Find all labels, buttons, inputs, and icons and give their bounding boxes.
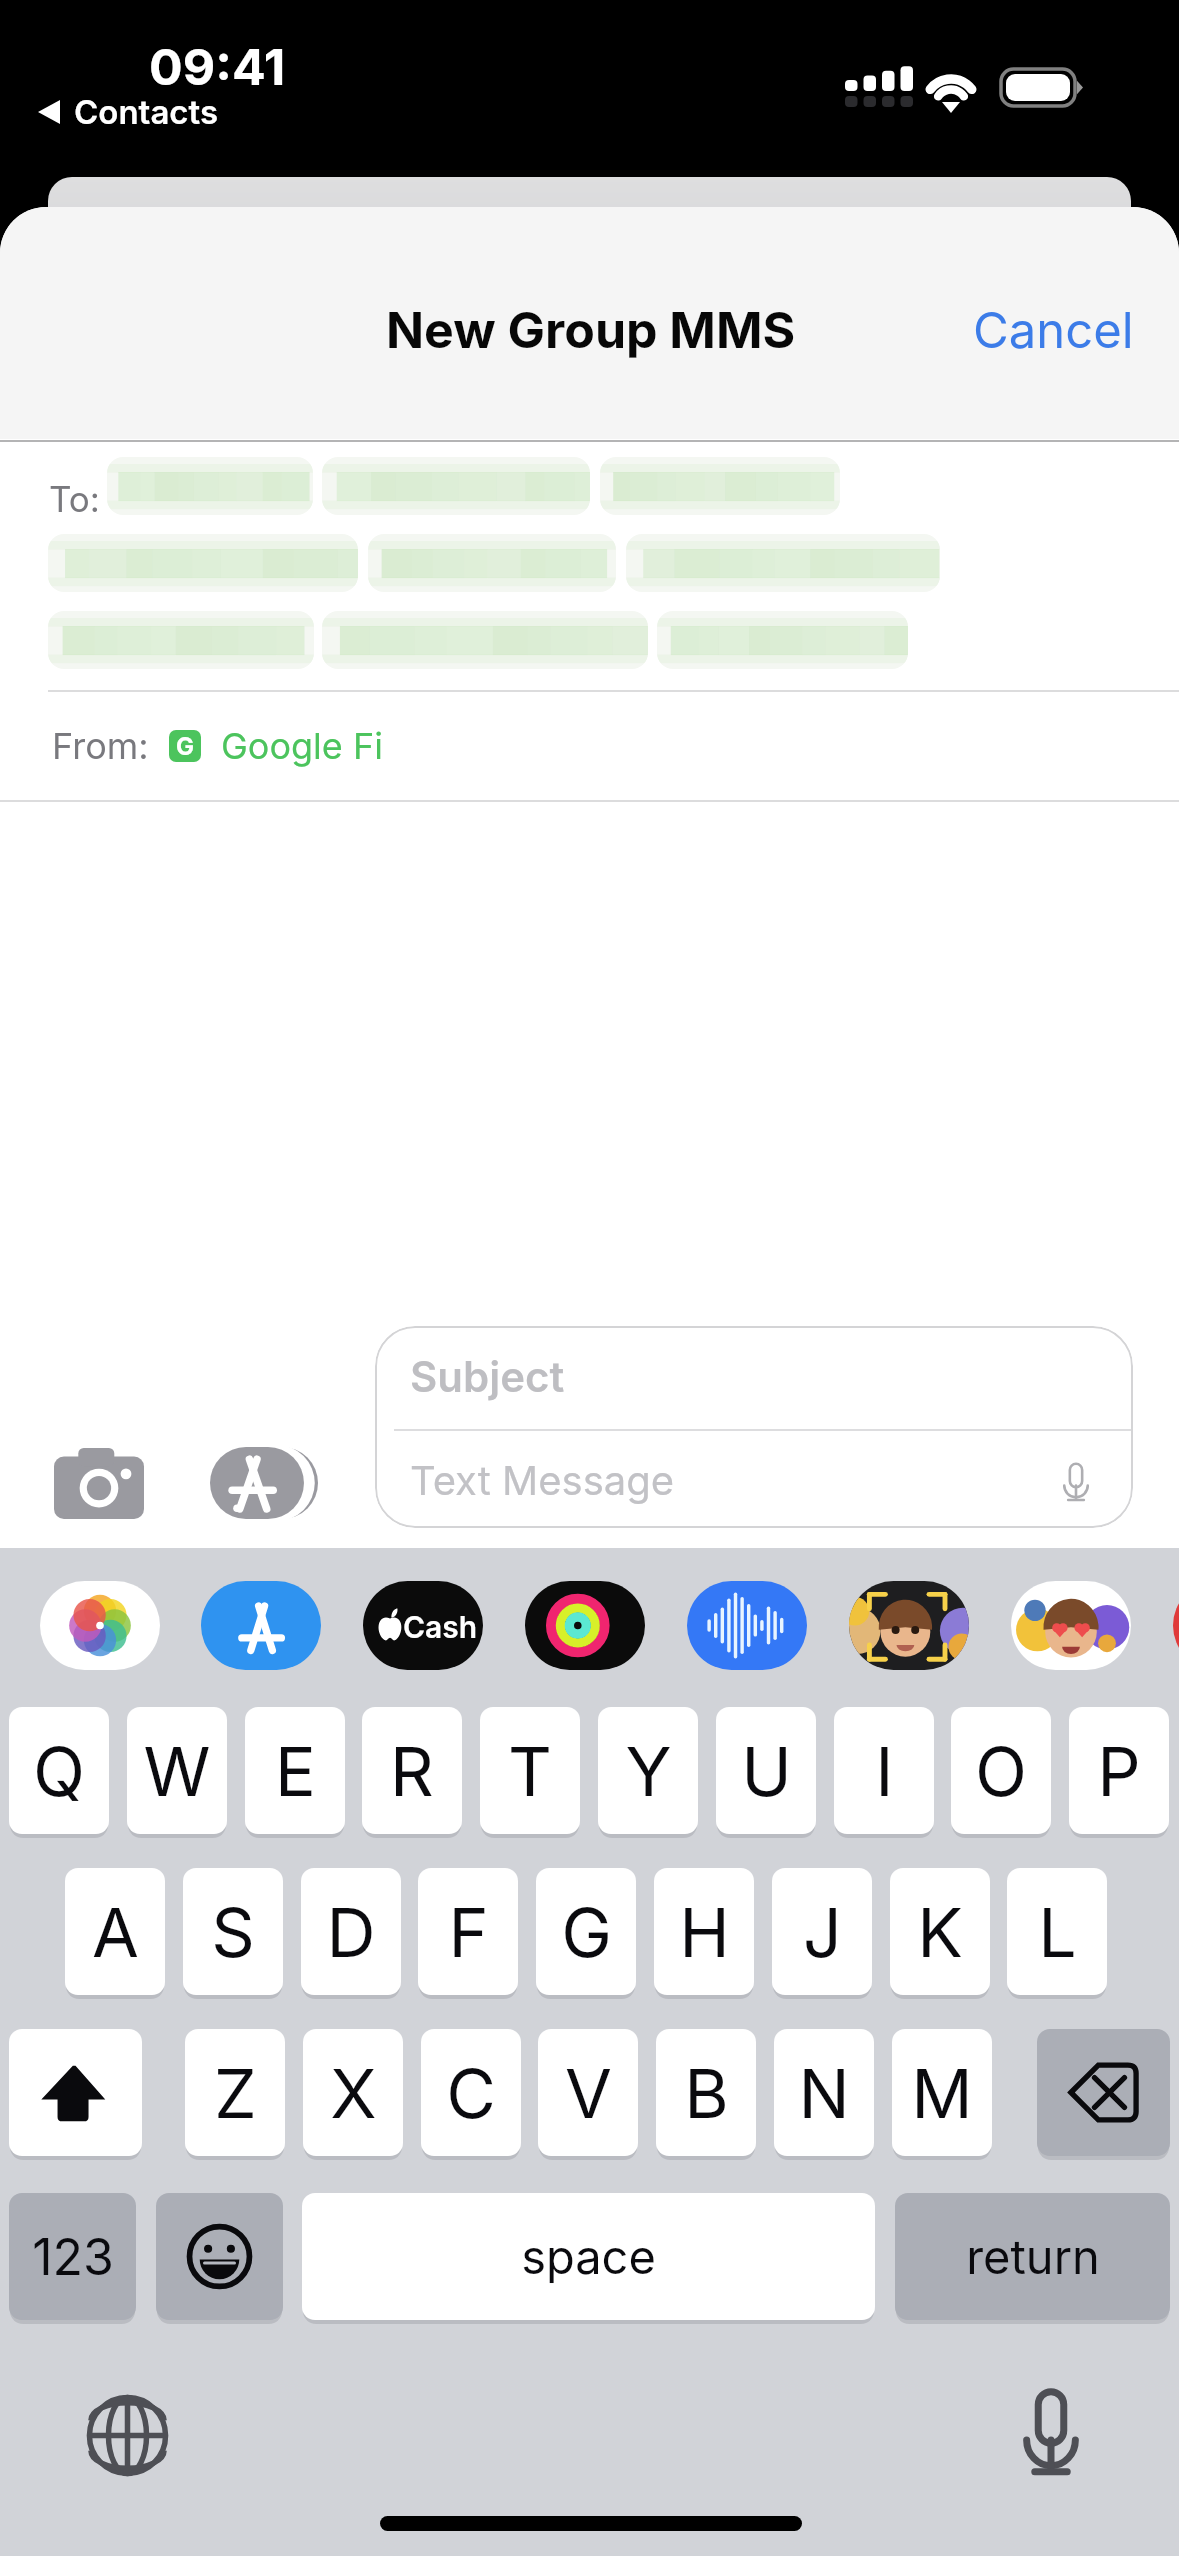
staticText: M [911, 2052, 973, 2134]
button[interactable]: space [302, 2193, 875, 2320]
button[interactable]: Emoji [156, 2193, 283, 2320]
staticText: N [798, 2052, 850, 2134]
staticText: G [561, 1891, 612, 1973]
button[interactable]: B [656, 2029, 756, 2156]
button[interactable]: O [951, 1707, 1051, 1834]
staticText: T [508, 1730, 552, 1812]
staticText: Cancel [973, 301, 1134, 360]
staticText: G [176, 732, 195, 761]
button[interactable]: S [183, 1868, 283, 1995]
button[interactable]: More apps [1173, 1581, 1179, 1670]
staticText: X [330, 2052, 377, 2134]
button[interactable]: Dictation [1022, 2390, 1080, 2476]
staticText: From: [52, 724, 149, 768]
button[interactable]: W [127, 1707, 227, 1834]
button[interactable]: App Store [201, 1581, 321, 1670]
button[interactable] [626, 534, 940, 592]
button[interactable]: Shift [9, 2029, 142, 2156]
staticText: W [143, 1730, 211, 1812]
button[interactable] [368, 534, 616, 592]
button[interactable]: From: [52, 724, 383, 768]
button[interactable]: V [538, 2029, 638, 2156]
staticText: I [875, 1730, 894, 1812]
button[interactable]: H [654, 1868, 754, 1995]
staticText: B [684, 2052, 729, 2134]
button[interactable] [657, 611, 908, 669]
button[interactable]: C [421, 2029, 521, 2156]
button[interactable]: G [536, 1868, 636, 1995]
button[interactable]: Switch keyboard [87, 2395, 168, 2476]
button[interactable]: Subject [375, 1326, 1133, 1528]
button[interactable]: Q [9, 1707, 109, 1834]
button[interactable]: U [716, 1707, 816, 1834]
staticText: 09:41 [149, 37, 286, 97]
button[interactable]: E [245, 1707, 345, 1834]
button[interactable]: I [834, 1707, 934, 1834]
staticText: Subject [410, 1351, 565, 1402]
button[interactable] [107, 457, 313, 515]
staticText: S [211, 1891, 255, 1973]
button[interactable]: N [774, 2029, 874, 2156]
staticText: Y [625, 1730, 672, 1812]
button[interactable]: J [772, 1868, 872, 1995]
staticText: K [917, 1891, 963, 1973]
staticText: H [679, 1891, 730, 1973]
button[interactable]: K [890, 1868, 990, 1995]
button[interactable] [48, 534, 358, 592]
staticText: Google Fi [221, 724, 383, 768]
button[interactable]: P [1069, 1707, 1169, 1834]
staticText: Z [214, 2052, 257, 2134]
staticText: New Group MMS [386, 300, 796, 360]
staticText: Contacts [74, 92, 219, 132]
button[interactable]: D [301, 1868, 401, 1995]
button[interactable]: Camera [54, 1448, 144, 1519]
staticText: R [390, 1730, 434, 1812]
button[interactable] [600, 457, 840, 515]
button[interactable]: Audio message [687, 1581, 807, 1670]
staticText: P [1097, 1730, 1141, 1812]
staticText: Cash [403, 1609, 478, 1645]
button[interactable]: M [892, 2029, 992, 2156]
button[interactable]: L [1007, 1868, 1107, 1995]
staticText: J [803, 1891, 842, 1973]
button[interactable]: Fitness [525, 1581, 645, 1670]
staticText: D [326, 1891, 376, 1973]
staticText: Text Message [410, 1456, 675, 1504]
button[interactable]: A [65, 1868, 165, 1995]
button[interactable]: Photos [40, 1581, 160, 1670]
staticText: A [92, 1891, 139, 1973]
button[interactable]: Memoji camera [849, 1581, 969, 1670]
staticText: V [565, 2052, 612, 2134]
button[interactable]: Contacts [38, 92, 219, 132]
staticText: Q [33, 1730, 85, 1812]
button[interactable]: T [480, 1707, 580, 1834]
button[interactable] [48, 611, 314, 669]
button[interactable] [322, 457, 590, 515]
staticText: return [966, 2228, 1100, 2285]
staticText: E [275, 1730, 316, 1812]
button[interactable]: return [895, 2193, 1170, 2320]
staticText: 123 [32, 2227, 114, 2287]
button[interactable]: F [418, 1868, 518, 1995]
staticText: C [446, 2052, 496, 2134]
button[interactable]: Z [185, 2029, 285, 2156]
staticText: space [521, 2228, 656, 2285]
button[interactable]: Memoji stickers [1011, 1581, 1131, 1670]
button[interactable]: 123 [9, 2193, 136, 2320]
button[interactable]: Cancel [929, 271, 1178, 390]
staticText: F [448, 1891, 489, 1973]
button[interactable]: Y [598, 1707, 698, 1834]
button[interactable]: X [303, 2029, 403, 2156]
button[interactable]: Apps [210, 1447, 318, 1519]
staticText: To: [49, 478, 100, 520]
staticText: U [741, 1730, 792, 1812]
staticText: O [975, 1730, 1027, 1812]
button[interactable]: Backspace [1037, 2029, 1170, 2156]
staticText: L [1038, 1891, 1077, 1973]
button[interactable] [322, 611, 648, 669]
button[interactable]: Apple Cash [363, 1581, 483, 1670]
button[interactable]: Dictate [1062, 1463, 1090, 1502]
button[interactable]: R [362, 1707, 462, 1834]
